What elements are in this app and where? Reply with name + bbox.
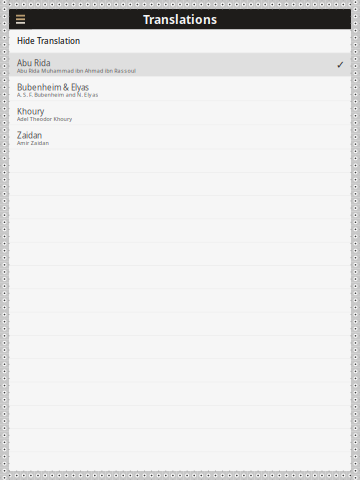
staticText: Zaidan xyxy=(17,130,42,141)
staticText: Abu Rida xyxy=(17,58,50,68)
staticText: Adel Theodor Khoury xyxy=(17,115,72,122)
button[interactable]: Abu Rida xyxy=(9,53,351,76)
staticText: ✓ xyxy=(336,59,345,71)
staticText: Bubenheim & Elyas xyxy=(17,82,89,93)
button[interactable]: Bubenheim & Elyas xyxy=(9,77,351,100)
staticText: A. S. F. Bubenheim and N. Elyas xyxy=(17,91,98,98)
button[interactable]: Hide Translation xyxy=(9,29,351,52)
button[interactable]: Khoury xyxy=(9,101,351,125)
staticText: Abu Rida Muhammad ibn Ahmad ibn Rassoul xyxy=(17,67,135,74)
button[interactable]: Menu xyxy=(9,9,32,29)
staticText: Khoury xyxy=(17,106,44,117)
button[interactable]: Zaidan xyxy=(9,125,351,149)
staticText: Amir Zaidan xyxy=(17,139,48,146)
staticText: Translations xyxy=(143,11,217,27)
staticText: Hide Translation xyxy=(17,36,80,46)
